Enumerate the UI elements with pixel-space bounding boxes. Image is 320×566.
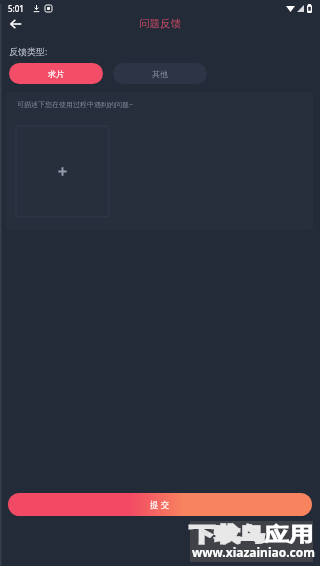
button[interactable]: Add image xyxy=(16,126,109,217)
staticText: 下载鸟 xyxy=(190,523,264,547)
staticText: www.xiazainiao.com xyxy=(192,544,315,560)
staticText: 应用 xyxy=(264,523,313,547)
staticText: 5:01 xyxy=(8,3,24,14)
staticText: 反馈类型: xyxy=(9,45,48,57)
staticText: 求片 xyxy=(48,69,64,79)
staticText: 提 交 xyxy=(150,499,170,511)
button[interactable]: 求片 xyxy=(9,63,103,84)
button[interactable]: 提 交 xyxy=(8,493,312,516)
staticText: 下载鸟 xyxy=(190,523,264,547)
button[interactable]: 其他 xyxy=(113,63,207,84)
button[interactable]: Back xyxy=(4,12,28,36)
staticText: 可描述下您在使用过程中遇到的问题~ xyxy=(17,100,134,110)
staticText: 其他 xyxy=(152,69,168,79)
staticText: 问题反馈 xyxy=(139,17,181,30)
